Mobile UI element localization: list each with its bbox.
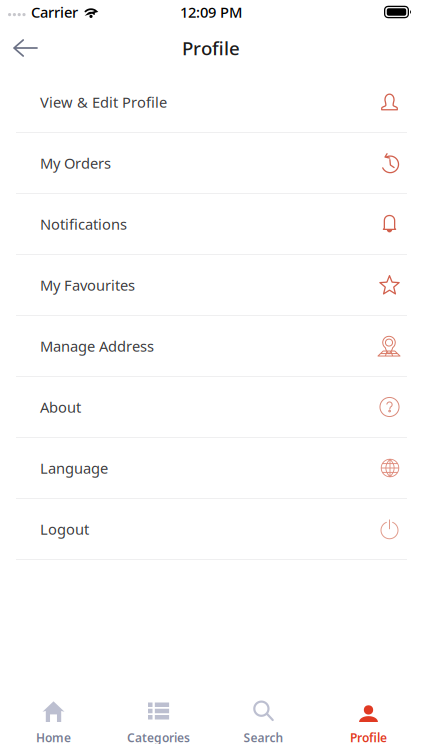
button[interactable]: My Orders	[0, 133, 422, 194]
staticText: My Orders	[40, 153, 111, 173]
button[interactable]: Search	[211, 700, 316, 744]
staticText: Carrier	[31, 2, 78, 22]
staticText: About	[40, 397, 81, 417]
button[interactable]: Logout	[0, 499, 422, 560]
staticText: Manage Address	[40, 336, 154, 356]
button[interactable]: Manage Address	[0, 316, 422, 377]
staticText: Logout	[40, 519, 89, 539]
staticText: Categories	[127, 729, 190, 745]
staticText: Profile	[182, 36, 240, 60]
button[interactable]: Back	[3, 29, 48, 67]
staticText: Search	[243, 729, 283, 745]
staticText: Home	[36, 729, 71, 745]
button[interactable]: About	[0, 377, 422, 438]
staticText: Notifications	[40, 214, 127, 234]
button[interactable]: My Favourites	[0, 255, 422, 316]
staticText: Language	[40, 458, 108, 478]
button[interactable]: Home	[1, 700, 106, 744]
button[interactable]: Notifications	[0, 194, 422, 255]
staticText: View & Edit Profile	[40, 92, 167, 112]
button[interactable]: Categories	[106, 700, 211, 744]
button[interactable]: View & Edit Profile	[0, 72, 422, 133]
button[interactable]: Language	[0, 438, 422, 499]
staticText: Profile	[350, 729, 387, 745]
staticText: My Favourites	[40, 275, 135, 295]
staticText: 12:09 PM	[180, 2, 242, 22]
button[interactable]: Profile	[316, 700, 421, 744]
